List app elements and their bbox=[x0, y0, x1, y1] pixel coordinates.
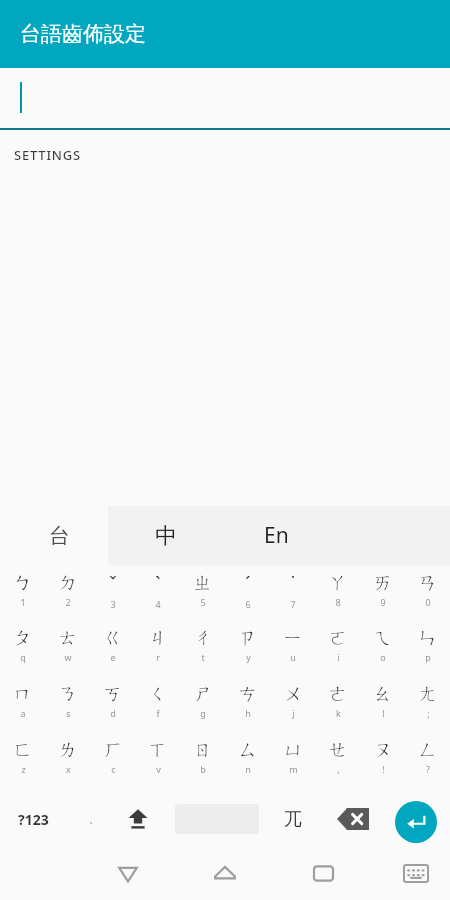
button[interactable]: ㄔ bbox=[181, 626, 225, 678]
staticText: ㄌ bbox=[58, 738, 78, 762]
staticText: z bbox=[21, 763, 26, 775]
button[interactable]: ㄉ bbox=[46, 571, 90, 623]
staticText: 。 bbox=[89, 814, 98, 825]
staticText: u bbox=[290, 651, 296, 663]
button[interactable]: 兀 bbox=[270, 796, 316, 842]
staticText: 台 bbox=[49, 523, 70, 549]
staticText: , bbox=[337, 763, 340, 775]
staticText: ㄊ bbox=[58, 626, 78, 650]
staticText: ㄆ bbox=[13, 626, 33, 650]
button[interactable]: ㄝ bbox=[316, 738, 360, 790]
staticText: ㄨ bbox=[283, 682, 303, 706]
staticText: y bbox=[246, 651, 251, 663]
staticText: r bbox=[156, 651, 160, 663]
button[interactable]: ㄤ bbox=[406, 682, 450, 734]
button[interactable]: ㄈ bbox=[1, 738, 45, 790]
staticText: p bbox=[425, 651, 431, 663]
staticText: ㄖ bbox=[193, 738, 213, 762]
staticText: m bbox=[289, 763, 298, 775]
staticText: ㄤ bbox=[418, 682, 438, 706]
staticText: n bbox=[245, 763, 251, 775]
button[interactable]: ㄣ bbox=[406, 626, 450, 678]
button[interactable]: ㄡ bbox=[361, 738, 405, 790]
staticText: 9 bbox=[380, 596, 386, 608]
button[interactable]: ㄆ bbox=[1, 626, 45, 678]
button[interactable]: ˇ bbox=[91, 571, 135, 623]
staticText: f bbox=[156, 707, 160, 719]
staticText: s bbox=[66, 707, 71, 719]
button[interactable]: Home bbox=[197, 846, 253, 900]
button[interactable]: ㄐ bbox=[136, 626, 180, 678]
staticText: SETTINGS bbox=[14, 146, 81, 164]
staticText: ㄠ bbox=[373, 682, 393, 706]
button[interactable]: ㄨ bbox=[271, 682, 315, 734]
button[interactable]: En bbox=[240, 506, 312, 565]
button[interactable]: ㄇ bbox=[1, 682, 45, 734]
button[interactable]: ㄋ bbox=[46, 682, 90, 734]
staticText: i bbox=[337, 651, 340, 663]
button[interactable]: ㄗ bbox=[226, 626, 270, 678]
staticText: ㄔ bbox=[193, 626, 213, 650]
button[interactable]: Shift bbox=[116, 796, 160, 842]
button[interactable]: ㄩ bbox=[271, 738, 315, 790]
button[interactable]: ㄓ bbox=[181, 571, 225, 623]
staticText: ㄐ bbox=[148, 626, 168, 650]
button[interactable]: ㄟ bbox=[361, 626, 405, 678]
staticText: ㄚ bbox=[328, 571, 348, 595]
button[interactable]: ㄒ bbox=[136, 738, 180, 790]
staticText: c bbox=[111, 763, 116, 775]
button[interactable]: ㄥ bbox=[406, 738, 450, 790]
button[interactable]: ㄏ bbox=[91, 738, 135, 790]
staticText: x bbox=[66, 763, 71, 775]
button[interactable]: ㄜ bbox=[316, 682, 360, 734]
button[interactable]: ㄢ bbox=[406, 571, 450, 623]
button[interactable]: ˊ bbox=[226, 571, 270, 623]
staticText: j bbox=[292, 707, 295, 719]
staticText: 6 bbox=[245, 598, 251, 610]
button[interactable]: 中 bbox=[130, 506, 202, 565]
button[interactable]: ˋ bbox=[136, 571, 180, 623]
staticText: ㄈ bbox=[13, 738, 33, 762]
button[interactable]: Recents bbox=[295, 846, 351, 900]
button[interactable]: ㄍ bbox=[91, 626, 135, 678]
button[interactable]: ㄛ bbox=[316, 626, 360, 678]
staticText: g bbox=[200, 707, 206, 719]
button[interactable]: ㄧ bbox=[271, 626, 315, 678]
button[interactable]: ㄙ bbox=[226, 738, 270, 790]
button[interactable]: ㄕ bbox=[181, 682, 225, 734]
button[interactable]: ㄠ bbox=[361, 682, 405, 734]
button[interactable] bbox=[0, 68, 450, 130]
staticText: ㄕ bbox=[193, 682, 213, 706]
staticText: ㄩ bbox=[283, 738, 303, 762]
button[interactable]: ?123 bbox=[2, 796, 64, 842]
button[interactable]: ㄖ bbox=[181, 738, 225, 790]
button[interactable]: ㄞ bbox=[361, 571, 405, 623]
staticText: 4 bbox=[155, 598, 161, 610]
staticText: ㄓ bbox=[193, 571, 213, 595]
staticText: ㄑ bbox=[148, 682, 168, 706]
staticText: ㄥ bbox=[418, 738, 438, 762]
button[interactable]: ㄘ bbox=[226, 682, 270, 734]
button[interactable]: Enter bbox=[395, 801, 437, 843]
staticText: k bbox=[336, 707, 341, 719]
staticText: ㄟ bbox=[373, 626, 393, 650]
staticText: ㄛ bbox=[328, 626, 348, 650]
button[interactable]: 台 bbox=[24, 506, 94, 565]
staticText: ㄣ bbox=[418, 626, 438, 650]
button[interactable]: Back bbox=[100, 846, 156, 900]
button[interactable]: ˙ bbox=[271, 571, 315, 623]
staticText: ㄜ bbox=[328, 682, 348, 706]
button[interactable]: ㄑ bbox=[136, 682, 180, 734]
button[interactable]: ㄊ bbox=[46, 626, 90, 678]
button[interactable]: ㄅ bbox=[1, 571, 45, 623]
button[interactable]: Backspace bbox=[330, 796, 376, 842]
staticText: t bbox=[201, 651, 205, 663]
button[interactable]: ㄌ bbox=[46, 738, 90, 790]
button[interactable]: ㄚ bbox=[316, 571, 360, 623]
staticText: ㄅ bbox=[13, 571, 33, 595]
button[interactable]: ㄎ bbox=[91, 682, 135, 734]
button[interactable]: Switch keyboard bbox=[388, 846, 444, 900]
staticText: ㄙ bbox=[238, 738, 258, 762]
